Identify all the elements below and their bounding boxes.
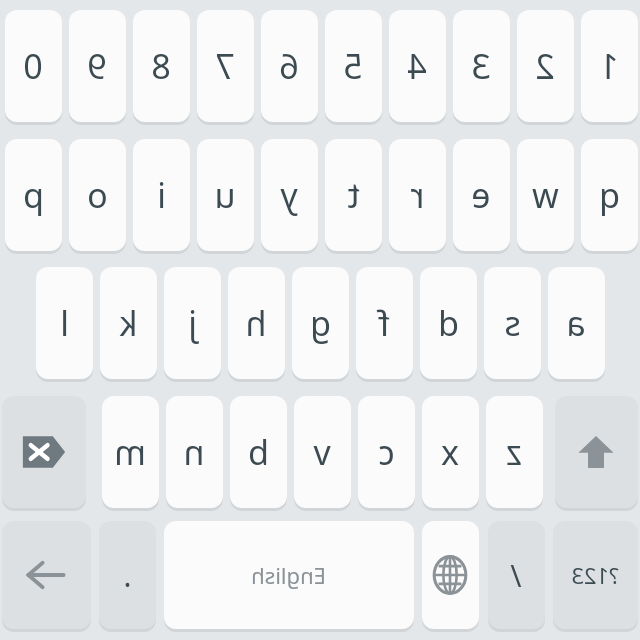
button[interactable]: z <box>486 396 543 508</box>
button[interactable]: k <box>100 267 157 379</box>
button[interactable]: 9 <box>69 10 126 122</box>
staticText: w <box>532 172 559 218</box>
button[interactable]: 6 <box>261 10 318 122</box>
staticText: 6 <box>279 43 299 89</box>
button[interactable]: c <box>358 396 415 508</box>
staticText: o <box>87 172 108 218</box>
button[interactable]: j <box>164 267 221 379</box>
button[interactable]: y <box>261 139 318 251</box>
staticText: n <box>183 429 205 475</box>
button[interactable]: g <box>292 267 349 379</box>
staticText: ?123 <box>571 560 619 590</box>
staticText: h <box>245 300 267 346</box>
staticText: 1 <box>599 43 619 89</box>
staticText: c <box>378 429 395 475</box>
staticText: 0 <box>23 43 43 89</box>
staticText: t <box>347 172 360 218</box>
button[interactable]: f <box>356 267 413 379</box>
button[interactable]: 4 <box>389 10 446 122</box>
button[interactable]: u <box>197 139 254 251</box>
staticText: b <box>248 429 269 475</box>
button[interactable]: x <box>422 396 479 508</box>
button[interactable]: 8 <box>133 10 190 122</box>
button[interactable]: Enter <box>2 521 91 629</box>
button[interactable]: r <box>389 139 446 251</box>
button[interactable]: v <box>294 396 351 508</box>
button[interactable]: 7 <box>197 10 254 122</box>
staticText: r <box>410 172 425 218</box>
button[interactable]: n <box>166 396 223 508</box>
button[interactable]: a <box>548 267 605 379</box>
button[interactable]: d <box>420 267 477 379</box>
staticText: 2 <box>535 43 555 89</box>
staticText: 9 <box>87 43 107 89</box>
button[interactable]: i <box>133 139 190 251</box>
button[interactable]: m <box>102 396 159 508</box>
button[interactable]: 0 <box>5 10 62 122</box>
button[interactable]: o <box>69 139 126 251</box>
button[interactable]: 1 <box>581 10 638 122</box>
button[interactable]: w <box>517 139 574 251</box>
button[interactable]: ?123 <box>553 521 638 629</box>
button[interactable]: 2 <box>517 10 574 122</box>
button[interactable]: t <box>325 139 382 251</box>
staticText: v <box>313 429 331 475</box>
button[interactable]: Change language <box>422 521 479 629</box>
staticText: s <box>504 300 521 346</box>
button[interactable]: English <box>164 521 414 629</box>
staticText: q <box>599 172 620 218</box>
staticText: / <box>510 555 522 596</box>
staticText: u <box>214 172 236 218</box>
staticText: l <box>60 300 69 346</box>
button[interactable]: q <box>581 139 638 251</box>
staticText: English <box>251 560 326 590</box>
staticText: k <box>119 300 138 346</box>
staticText: z <box>506 429 522 475</box>
staticText: 7 <box>215 43 235 89</box>
button[interactable]: e <box>453 139 510 251</box>
staticText: 4 <box>407 43 427 89</box>
button[interactable]: s <box>484 267 541 379</box>
staticText: . <box>123 555 132 596</box>
staticText: g <box>310 300 331 346</box>
staticText: m <box>114 429 146 475</box>
button[interactable]: l <box>36 267 93 379</box>
staticText: p <box>23 172 44 218</box>
staticText: 3 <box>471 43 491 89</box>
staticText: 8 <box>151 43 171 89</box>
button[interactable]: Backspace <box>2 396 86 508</box>
button[interactable]: 3 <box>453 10 510 122</box>
staticText: x <box>441 429 459 475</box>
staticText: i <box>157 172 166 218</box>
staticText: j <box>188 300 197 346</box>
button[interactable]: . <box>99 521 156 629</box>
staticText: f <box>378 300 390 346</box>
button[interactable]: 5 <box>325 10 382 122</box>
staticText: d <box>438 300 459 346</box>
staticText: 5 <box>343 43 363 89</box>
button[interactable]: b <box>230 396 287 508</box>
button[interactable]: h <box>228 267 285 379</box>
staticText: e <box>471 172 491 218</box>
staticText: a <box>566 300 586 346</box>
button[interactable]: / <box>488 521 545 629</box>
staticText: y <box>280 172 298 218</box>
button[interactable]: Shift <box>555 396 638 508</box>
button[interactable]: p <box>5 139 62 251</box>
